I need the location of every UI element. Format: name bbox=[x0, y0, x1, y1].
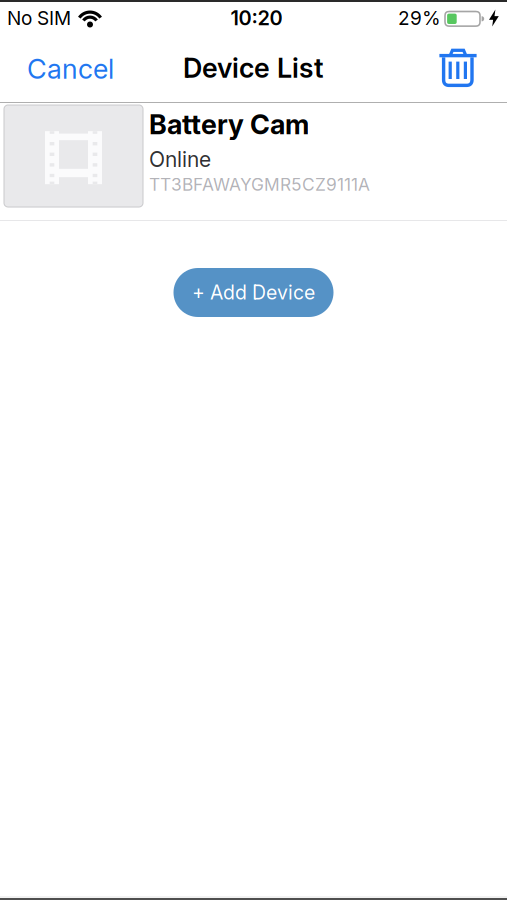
staticText: Battery Cam bbox=[149, 108, 309, 141]
button[interactable]: + Add Device bbox=[173, 268, 333, 317]
staticText: No SIM bbox=[7, 6, 71, 29]
button[interactable]: Delete bbox=[437, 46, 507, 86]
staticText: Cancel bbox=[27, 53, 114, 85]
staticText: + Add Device bbox=[192, 281, 315, 304]
button[interactable]: Battery Cam bbox=[0, 103, 507, 207]
staticText: Online bbox=[149, 147, 211, 172]
staticText: TT3BFAWAYGMR5CZ9111A bbox=[149, 174, 370, 195]
button[interactable]: Cancel bbox=[0, 50, 114, 82]
staticText: Device List bbox=[183, 52, 324, 84]
staticText: 29% bbox=[398, 6, 441, 29]
staticText: 10:20 bbox=[230, 6, 282, 30]
